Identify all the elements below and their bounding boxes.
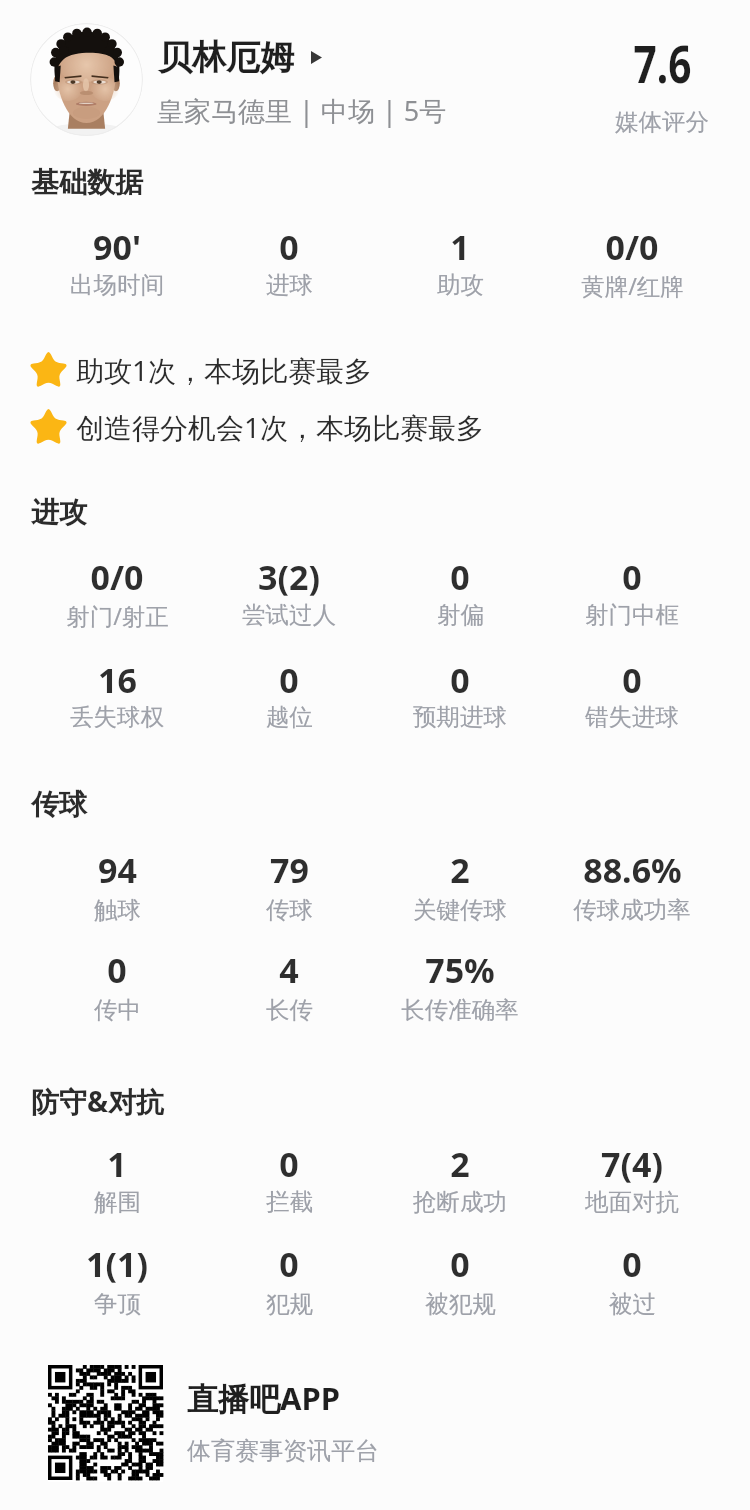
staticText: 抢断成功 bbox=[413, 1187, 507, 1217]
staticText: 贝林厄姆 bbox=[158, 36, 294, 79]
staticText: 2 bbox=[450, 847, 470, 893]
button[interactable] bbox=[26, 403, 496, 451]
staticText: 7.6 bbox=[633, 27, 692, 98]
button[interactable] bbox=[199, 1237, 379, 1312]
staticText: 解围 bbox=[94, 1187, 141, 1217]
button[interactable] bbox=[26, 346, 496, 394]
staticText: 传球成功率 bbox=[573, 895, 691, 925]
staticText: 射偏 bbox=[437, 600, 484, 630]
button[interactable] bbox=[27, 550, 207, 623]
staticText: 预期进球 bbox=[413, 702, 507, 732]
button[interactable] bbox=[27, 1237, 207, 1312]
staticText: 88.6% bbox=[583, 847, 682, 893]
staticText: 0/0 bbox=[90, 554, 144, 600]
staticText: 被过 bbox=[609, 1289, 656, 1319]
staticText: 进球 bbox=[266, 270, 313, 300]
staticText: 进攻 bbox=[31, 495, 87, 530]
button[interactable] bbox=[370, 220, 550, 293]
button[interactable] bbox=[542, 1137, 722, 1210]
staticText: 犯规 bbox=[266, 1289, 313, 1319]
staticText: 0 bbox=[107, 947, 127, 993]
staticText: 传球 bbox=[266, 895, 313, 925]
staticText: 丢失球权 bbox=[70, 702, 164, 732]
staticText: 创造得分机会1次，本场比赛最多 bbox=[76, 408, 485, 446]
button[interactable] bbox=[27, 1137, 207, 1210]
button[interactable] bbox=[542, 220, 722, 293]
staticText: 1 bbox=[450, 224, 470, 270]
button[interactable]: Open 直播吧APP bbox=[40, 1358, 390, 1490]
staticText: 0 bbox=[622, 657, 642, 703]
button[interactable] bbox=[27, 943, 207, 1018]
button[interactable] bbox=[542, 550, 722, 623]
button[interactable] bbox=[370, 943, 550, 1018]
staticText: 黄牌/红牌 bbox=[581, 270, 684, 302]
staticText: 75% bbox=[425, 947, 495, 993]
staticText: 94 bbox=[98, 847, 137, 893]
staticText: 争顶 bbox=[94, 1289, 141, 1319]
staticText: 1 bbox=[107, 1141, 127, 1187]
staticText: 0/0 bbox=[605, 224, 659, 270]
staticText: 传球 bbox=[31, 787, 87, 822]
button[interactable] bbox=[199, 943, 379, 1018]
staticText: 基础数据 bbox=[31, 165, 143, 200]
staticText: 4 bbox=[279, 947, 299, 993]
button[interactable]: Player photo bbox=[30, 23, 143, 136]
staticText: 触球 bbox=[94, 895, 141, 925]
staticText: 射门/射正 bbox=[66, 600, 169, 632]
staticText: 79 bbox=[270, 847, 309, 893]
button[interactable] bbox=[27, 653, 207, 725]
staticText: 拦截 bbox=[266, 1187, 313, 1217]
staticText: 0 bbox=[279, 224, 299, 270]
button[interactable] bbox=[199, 550, 379, 623]
button[interactable] bbox=[542, 843, 722, 917]
staticText: 助攻1次，本场比赛最多 bbox=[76, 351, 373, 389]
staticText: 尝试过人 bbox=[242, 600, 336, 630]
staticText: 0 bbox=[450, 1241, 470, 1287]
staticText: 地面对抗 bbox=[585, 1187, 679, 1217]
staticText: 0 bbox=[279, 657, 299, 703]
staticText: 0 bbox=[450, 554, 470, 600]
staticText: 0 bbox=[622, 1241, 642, 1287]
staticText: 7(4) bbox=[601, 1141, 663, 1187]
staticText: 2 bbox=[450, 1141, 470, 1187]
staticText: 90' bbox=[93, 224, 141, 270]
button[interactable] bbox=[542, 1237, 722, 1312]
staticText: 错失进球 bbox=[585, 702, 679, 732]
staticText: 关键传球 bbox=[413, 895, 507, 925]
staticText: 3(2) bbox=[258, 554, 320, 600]
staticText: 0 bbox=[622, 554, 642, 600]
staticText: 长传 bbox=[266, 995, 313, 1025]
button[interactable] bbox=[370, 843, 550, 917]
button[interactable] bbox=[199, 1137, 379, 1210]
staticText: 传中 bbox=[94, 995, 141, 1025]
staticText: 0 bbox=[279, 1241, 299, 1287]
button[interactable] bbox=[199, 220, 379, 293]
staticText: 防守&对抗 bbox=[31, 1082, 165, 1120]
staticText: 助攻 bbox=[437, 270, 484, 300]
button[interactable] bbox=[199, 653, 379, 725]
staticText: 媒体评分 bbox=[615, 107, 709, 137]
staticText: 0 bbox=[450, 657, 470, 703]
button[interactable] bbox=[27, 220, 207, 293]
staticText: 体育赛事资讯平台 bbox=[187, 1436, 379, 1466]
staticText: 皇家马德里 | 中场 | 5号 bbox=[157, 92, 447, 129]
button[interactable] bbox=[370, 1237, 550, 1312]
staticText: 直播吧APP bbox=[187, 1377, 340, 1419]
button[interactable] bbox=[370, 1137, 550, 1210]
staticText: 16 bbox=[98, 657, 137, 703]
button[interactable] bbox=[370, 550, 550, 623]
staticText: 1(1) bbox=[86, 1241, 148, 1287]
button[interactable] bbox=[27, 843, 207, 917]
staticText: 射门中框 bbox=[585, 600, 679, 630]
button[interactable] bbox=[370, 653, 550, 725]
button[interactable] bbox=[199, 843, 379, 917]
staticText: 0 bbox=[279, 1141, 299, 1187]
staticText: 出场时间 bbox=[70, 270, 164, 300]
button[interactable] bbox=[542, 653, 722, 725]
staticText: 越位 bbox=[266, 702, 313, 732]
staticText: 被犯规 bbox=[425, 1289, 496, 1319]
staticText: 长传准确率 bbox=[401, 995, 519, 1025]
